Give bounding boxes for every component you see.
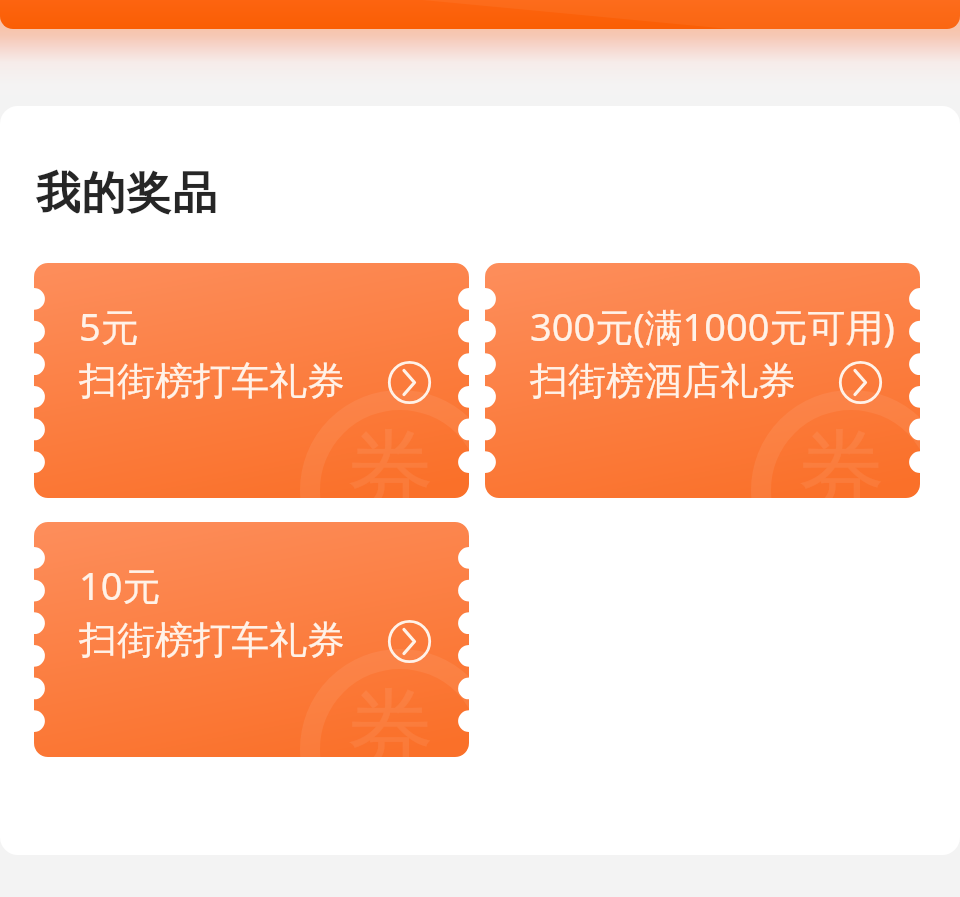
staticText: 我的奖品: [36, 166, 219, 221]
staticText: 券: [346, 416, 434, 527]
staticText: 券: [797, 416, 885, 527]
staticText: 扫街榜酒店礼券: [530, 357, 796, 405]
button[interactable]: Use coupon: [385, 617, 434, 666]
staticText: 扫街榜打车礼券: [79, 616, 345, 664]
staticText: 300元(满1000元可用): [530, 300, 895, 352]
button[interactable]: 券: [34, 263, 469, 498]
button[interactable]: Use coupon: [836, 358, 885, 407]
button[interactable]: 券: [34, 522, 469, 757]
staticText: 10元: [79, 559, 161, 611]
button[interactable]: Use coupon: [385, 358, 434, 407]
staticText: 券: [346, 675, 434, 786]
staticText: 扫街榜打车礼券: [79, 357, 345, 405]
staticText: 5元: [79, 300, 139, 352]
button[interactable]: 券: [485, 263, 920, 498]
